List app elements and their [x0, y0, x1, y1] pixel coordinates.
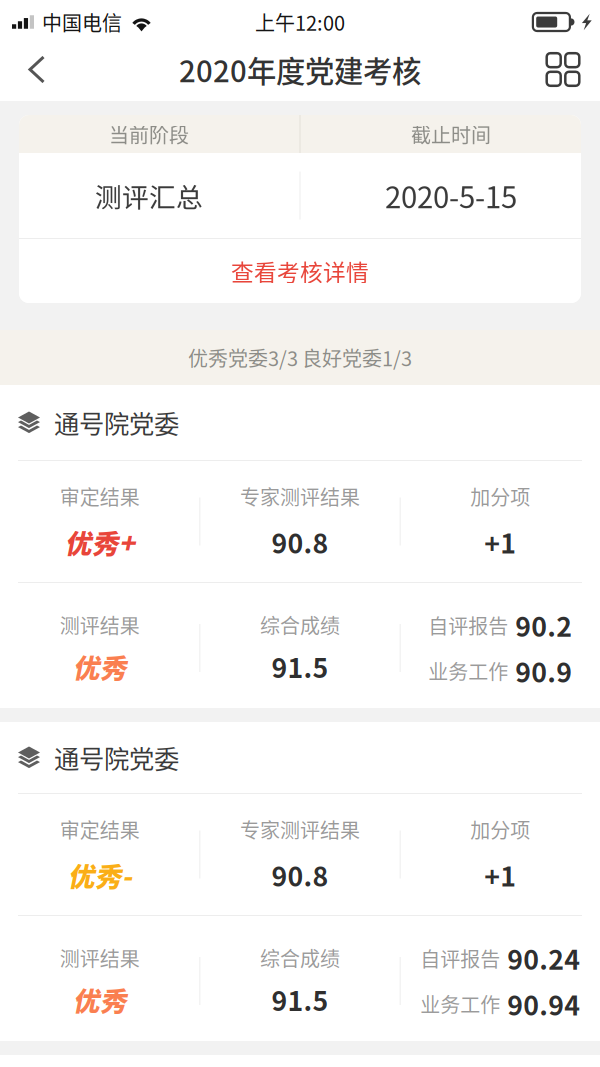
staticText: 优秀	[73, 980, 127, 1019]
staticText: 加分项	[470, 815, 530, 844]
staticText: 专家测评结果	[240, 815, 360, 844]
staticText: 审定结果	[60, 815, 140, 844]
staticText: 2020年度党建考核	[179, 48, 421, 91]
staticText: 审定结果	[60, 482, 140, 511]
button[interactable]: 通号院党委	[0, 385, 600, 460]
staticText: 90.2	[515, 606, 572, 644]
button[interactable]: Grid view	[538, 44, 600, 101]
staticText: 专家测评结果	[240, 482, 360, 511]
staticText: 上午12:00	[255, 7, 345, 36]
staticText: 90.8	[271, 523, 328, 561]
button[interactable]: 通号院党委	[0, 722, 600, 793]
staticText: 测评结果	[60, 610, 140, 639]
staticText: 综合成绩	[260, 610, 340, 639]
staticText: 测评结果	[60, 943, 140, 972]
staticText: 通号院党委	[54, 404, 179, 441]
staticText: 截止时间	[411, 119, 491, 148]
button[interactable]: Back	[0, 44, 62, 101]
staticText: 业务工作	[420, 989, 500, 1018]
staticText: 业务工作	[428, 656, 508, 685]
staticText: 自评报告	[420, 944, 500, 973]
staticText: 自评报告	[428, 611, 508, 640]
staticText: 优秀+	[65, 523, 135, 561]
staticText: 91.5	[271, 980, 328, 1019]
staticText: 90.8	[271, 856, 328, 894]
staticText: 优秀党委3/3 良好党委1/3	[188, 343, 412, 372]
staticText: 优秀	[73, 647, 127, 686]
staticText: 测评汇总	[95, 176, 203, 215]
staticText: 加分项	[470, 482, 530, 511]
staticText: 当前阶段	[109, 119, 189, 148]
button[interactable]: 查看考核详情	[19, 239, 581, 303]
staticText: +1	[484, 523, 516, 561]
staticText: +1	[484, 856, 516, 894]
staticText: 综合成绩	[260, 943, 340, 972]
staticText: 通号院党委	[54, 739, 179, 776]
staticText: 中国电信	[42, 7, 122, 36]
staticText: 查看考核详情	[231, 255, 369, 287]
staticText: 优秀-	[68, 856, 132, 894]
staticText: 90.9	[515, 651, 572, 690]
staticText: 90.24	[507, 939, 580, 977]
staticText: 91.5	[271, 647, 328, 686]
staticText: 90.94	[507, 984, 580, 1023]
staticText: 2020-5-15	[385, 174, 517, 217]
